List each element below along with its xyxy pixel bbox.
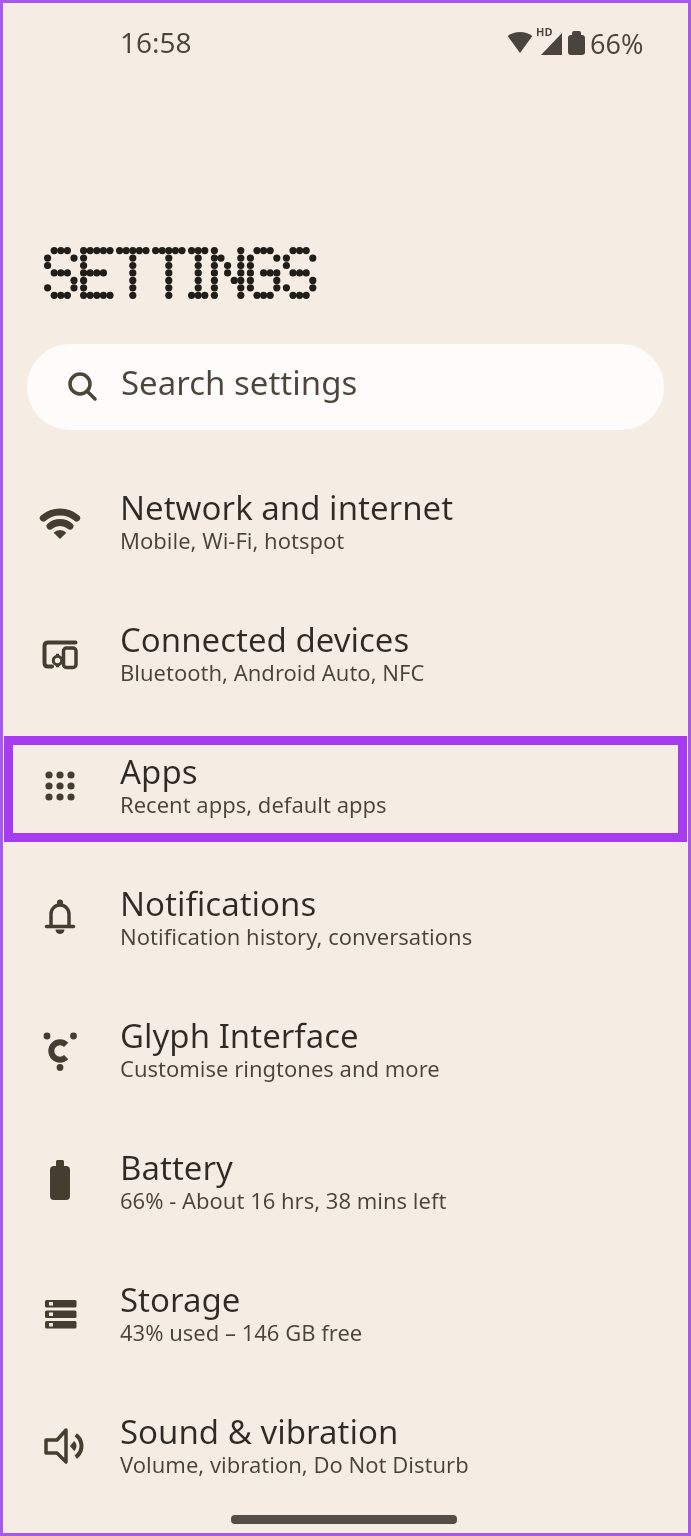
- staticText: 66% - About 16 hrs, 38 mins left: [120, 1185, 447, 1215]
- staticText: Battery: [120, 1145, 233, 1190]
- staticText: HD: [536, 24, 553, 39]
- staticText: Notification history, conversations: [120, 921, 473, 951]
- staticText: 66%: [590, 25, 644, 62]
- staticText: Customise ringtones and more: [120, 1053, 440, 1083]
- button[interactable]: Connected devices: [0, 591, 691, 723]
- staticText: Apps: [120, 749, 198, 794]
- staticText: Recent apps, default apps: [120, 789, 387, 819]
- staticText: Search settings: [121, 360, 358, 405]
- staticText: Network and internet: [120, 485, 454, 530]
- staticText: Storage: [120, 1277, 241, 1322]
- staticText: Notifications: [120, 881, 317, 926]
- staticText: Bluetooth, Android Auto, NFC: [120, 657, 425, 687]
- button[interactable]: Network and internet: [0, 459, 691, 591]
- button[interactable]: Battery: [0, 1119, 691, 1251]
- staticText: Mobile, Wi-Fi, hotspot: [120, 525, 345, 555]
- staticText: 16:58: [120, 23, 192, 61]
- button[interactable]: Search settings: [27, 344, 664, 430]
- button[interactable]: Storage: [0, 1251, 691, 1383]
- staticText: 43% used – 146 GB free: [120, 1317, 363, 1347]
- staticText: Volume, vibration, Do Not Disturb: [120, 1449, 469, 1479]
- staticText: Sound & vibration: [120, 1409, 399, 1454]
- staticText: Glyph Interface: [120, 1013, 359, 1058]
- button[interactable]: Sound & vibration: [0, 1383, 691, 1515]
- button[interactable]: Glyph Interface: [0, 987, 691, 1119]
- button[interactable]: Apps: [0, 723, 691, 855]
- staticText: Connected devices: [120, 617, 410, 662]
- button[interactable]: Notifications: [0, 855, 691, 987]
